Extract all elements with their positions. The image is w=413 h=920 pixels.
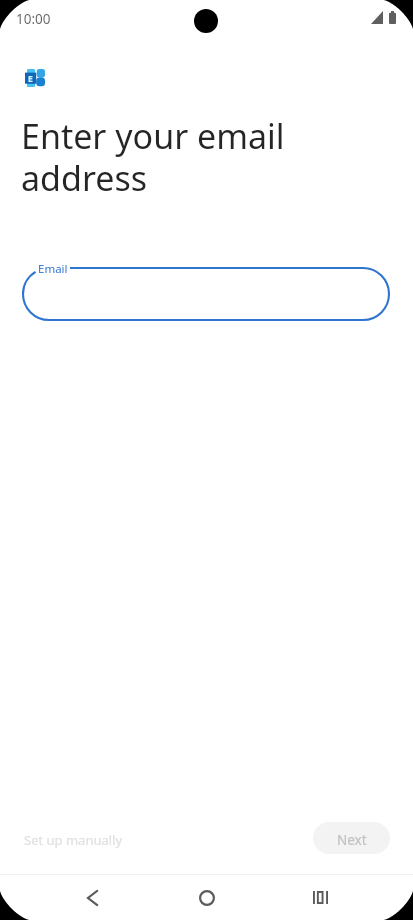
button[interactable]: Home [182,875,231,920]
button[interactable]: Set up manually [12,823,135,857]
staticText: 10:00 [16,10,51,28]
staticText: Set up manually [24,831,123,849]
staticText: Next [337,831,367,849]
button[interactable]: Recent apps [296,875,345,920]
button[interactable]: Next [313,822,390,854]
button[interactable]: Back [68,875,117,920]
staticText: Enter your email address [21,113,285,201]
staticText: Email [38,261,68,277]
staticText: E [28,73,33,85]
